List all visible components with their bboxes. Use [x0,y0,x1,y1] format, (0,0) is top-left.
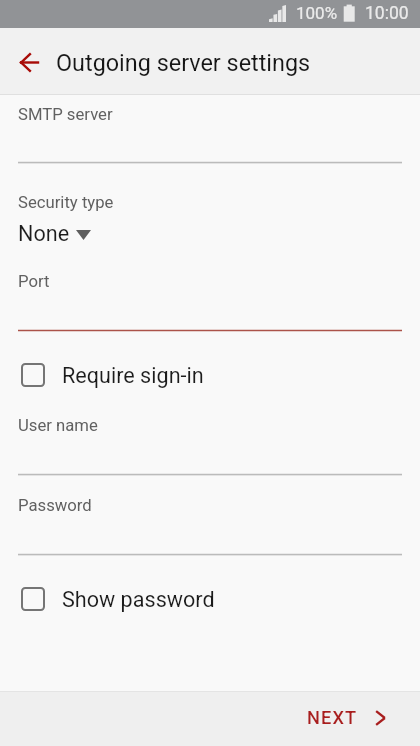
staticText: 10:00 [365,3,409,24]
staticText: NEXT [307,707,358,728]
staticText: Outgoing server settings [56,49,311,76]
staticText: Require sign-in [62,363,204,388]
staticText: Port [18,272,50,292]
button[interactable]: Password [0,488,420,564]
staticText: Security type [18,193,114,213]
button[interactable]: SMTP server [0,96,420,172]
button[interactable]: Navigate up [4,37,52,85]
button[interactable]: Show password [0,576,420,621]
button[interactable]: User name [0,408,420,484]
staticText: Password [18,496,92,516]
staticText: 100% [296,3,338,23]
staticText: None [18,221,70,246]
button[interactable]: Require sign-in [0,352,420,397]
button[interactable]: Port [0,262,420,340]
staticText: SMTP server [18,105,113,125]
button[interactable]: Security type [0,182,420,252]
staticText: Show password [62,587,215,612]
button[interactable]: NEXT [292,692,420,746]
staticText: User name [18,416,98,436]
